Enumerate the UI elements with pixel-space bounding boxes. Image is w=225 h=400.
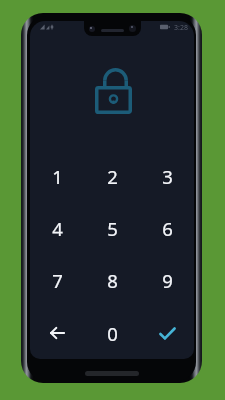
staticText: 0 xyxy=(107,321,118,346)
button[interactable]: 0 xyxy=(89,316,135,350)
button[interactable]: Confirm xyxy=(144,316,190,350)
staticText: 8 xyxy=(107,268,118,293)
staticText: 1 xyxy=(52,164,63,189)
staticText: 7 xyxy=(52,268,63,293)
button[interactable]: 2 xyxy=(89,159,135,193)
staticText: 6 xyxy=(162,216,173,241)
staticText: 4 xyxy=(52,216,63,241)
button[interactable]: 1 xyxy=(34,159,80,193)
button[interactable]: 3 xyxy=(144,159,190,193)
button[interactable]: 7 xyxy=(34,263,80,297)
staticText: 5 xyxy=(107,216,118,241)
button[interactable]: 4 xyxy=(34,211,80,245)
staticText: 3 xyxy=(162,164,173,189)
staticText: 9 xyxy=(162,268,173,293)
button[interactable]: 6 xyxy=(144,211,190,245)
button[interactable]: 8 xyxy=(89,263,135,297)
staticText: 3:28 xyxy=(174,23,188,33)
button[interactable]: 5 xyxy=(89,211,135,245)
staticText: 2 xyxy=(107,164,118,189)
button[interactable]: Delete xyxy=(34,316,80,350)
button[interactable]: 9 xyxy=(144,263,190,297)
